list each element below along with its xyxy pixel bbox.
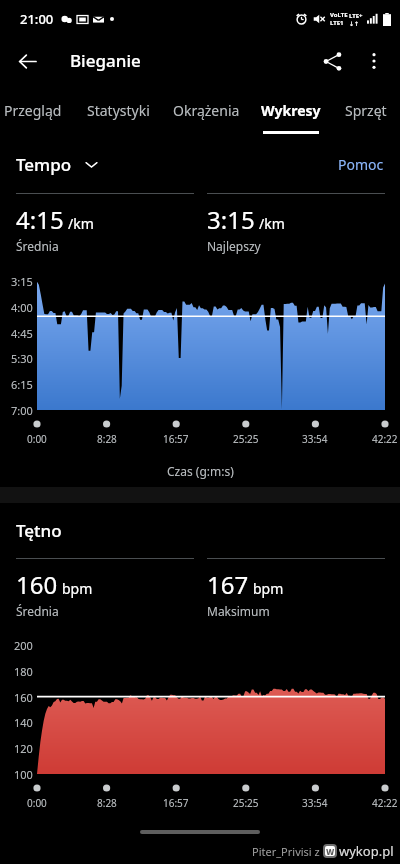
staticText: Przegląd xyxy=(4,101,62,120)
staticText: 25:25 xyxy=(233,432,259,446)
staticText: 42:22 xyxy=(372,432,398,446)
staticText: VoLTE xyxy=(330,11,348,19)
staticText: 33:54 xyxy=(302,796,328,810)
staticText: Piter_Privisi z xyxy=(252,844,323,859)
staticText: /km xyxy=(68,214,94,233)
staticText: 8:28 xyxy=(97,796,117,810)
staticText: /km xyxy=(259,214,285,233)
staticText: LTE+ xyxy=(349,12,363,20)
staticText: 42:22 xyxy=(372,796,398,810)
button[interactable]: Okrążenia xyxy=(154,98,258,146)
button[interactable]: Pomoc xyxy=(338,155,384,174)
staticText: 0:00 xyxy=(27,796,47,810)
button[interactable]: Tempo xyxy=(16,153,98,176)
staticText: wykop.pl xyxy=(339,842,394,860)
staticText: 160 xyxy=(16,568,58,601)
staticText: Statystyki xyxy=(87,101,150,120)
button[interactable]: Tętno xyxy=(16,519,62,542)
staticText: 3:15 xyxy=(207,203,255,236)
staticText: 4:15 xyxy=(16,203,64,236)
staticText: Okrążenia xyxy=(173,101,240,120)
staticText: W xyxy=(326,846,335,856)
button[interactable]: Wykresy xyxy=(239,98,343,146)
staticText: Średnia xyxy=(16,238,59,254)
staticText: 8:28 xyxy=(97,432,117,446)
staticText: 7:00 xyxy=(11,403,33,418)
staticText: Najlepszy xyxy=(207,238,261,254)
staticText: bpm xyxy=(62,579,93,598)
staticText: 4:45 xyxy=(11,326,33,341)
staticText: ↓↑ xyxy=(349,20,360,27)
button[interactable]: Back xyxy=(7,41,47,81)
staticText: 0:00 xyxy=(27,432,47,446)
staticText: 21:00 xyxy=(20,10,54,28)
staticText: 3:15 xyxy=(11,274,33,289)
staticText: 120 xyxy=(14,741,33,756)
staticText: 140 xyxy=(14,715,33,730)
staticText: Czas (g:m:s) xyxy=(167,463,234,479)
staticText: 180 xyxy=(14,664,33,679)
button[interactable]: Przegląd xyxy=(0,98,85,146)
staticText: 33:54 xyxy=(302,432,328,446)
staticText: 4:00 xyxy=(11,300,33,315)
staticText: 100 xyxy=(14,767,33,782)
staticText: Pomoc xyxy=(338,155,384,174)
button[interactable]: Sprzęt xyxy=(314,98,400,146)
staticText: bpm xyxy=(253,579,284,598)
staticText: 5:30 xyxy=(11,351,33,366)
staticText: 160 xyxy=(14,690,33,705)
staticText: Tempo xyxy=(16,153,72,176)
staticText: Średnia xyxy=(16,603,59,619)
staticText: Bieganie xyxy=(70,49,141,72)
staticText: 167 xyxy=(207,568,249,601)
button[interactable]: Share xyxy=(310,39,354,83)
staticText: Sprzęt xyxy=(345,101,387,120)
staticText: LTE1 xyxy=(330,19,344,27)
staticText: Wykresy xyxy=(261,101,321,120)
staticText: 6:15 xyxy=(11,377,33,392)
staticText: Tętno xyxy=(16,519,62,542)
staticText: Maksimum xyxy=(207,603,270,619)
button[interactable]: More options xyxy=(354,41,394,81)
staticText: 16:57 xyxy=(163,432,189,446)
staticText: 200 xyxy=(14,638,33,653)
button[interactable]: Statystyki xyxy=(66,98,170,146)
staticText: 25:25 xyxy=(233,796,259,810)
staticText: 16:57 xyxy=(163,796,189,810)
